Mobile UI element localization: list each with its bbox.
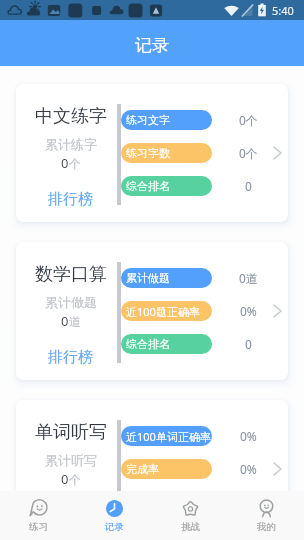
button[interactable]: 练习文字 <box>121 110 212 130</box>
staticText: 5:40 <box>272 3 294 18</box>
staticText: 0% <box>240 461 257 477</box>
button[interactable]: 近100单词正确率 <box>121 426 212 446</box>
button[interactable]: 记录 <box>0 20 304 66</box>
staticText: 记录 <box>135 35 169 56</box>
button[interactable]: 近100题正确率 <box>121 301 212 321</box>
staticText: 个 <box>69 156 81 171</box>
button[interactable]: 完成率 <box>121 459 212 479</box>
button[interactable]: 挑战 <box>152 491 228 540</box>
button[interactable]: 练习 <box>0 491 76 540</box>
staticText: 记录 <box>105 521 124 533</box>
staticText: 0个 <box>239 145 258 161</box>
staticText: 练习文字 <box>126 113 170 127</box>
button[interactable]: 数学口算 <box>16 242 288 380</box>
staticText: 近100单词正确率 <box>126 429 211 444</box>
button[interactable]: 累计做题 <box>121 268 212 288</box>
button[interactable]: 排行榜 <box>48 348 93 367</box>
staticText: 综合排名 <box>126 179 170 193</box>
staticText: 挑战 <box>181 521 200 533</box>
staticText: 0 <box>61 470 69 488</box>
staticText: 累计练字 <box>45 136 97 152</box>
staticText: 我的 <box>257 521 276 533</box>
staticText: 练习字数 <box>126 146 170 160</box>
staticText: 道 <box>69 314 81 329</box>
button[interactable]: 查看详情 <box>269 461 285 477</box>
button[interactable]: 排行榜 <box>48 190 93 209</box>
staticText: 0 <box>245 336 252 352</box>
button[interactable]: 单词听写 <box>16 400 288 491</box>
staticText: 0 <box>245 178 252 194</box>
staticText: 练习 <box>29 521 48 533</box>
staticText: 0% <box>240 303 257 319</box>
staticText: 0 <box>61 154 69 172</box>
staticText: 近100题正确率 <box>126 304 200 319</box>
staticText: 中文练字 <box>35 105 107 128</box>
staticText: 个 <box>69 472 81 487</box>
staticText: 0% <box>240 428 257 444</box>
staticText: 单词听写 <box>35 421 107 444</box>
button[interactable]: 中文练字 <box>16 84 288 222</box>
staticText: 数学口算 <box>35 263 107 286</box>
staticText: 完成率 <box>126 462 159 476</box>
staticText: 排行榜 <box>48 348 93 367</box>
staticText: 综合排名 <box>126 337 170 351</box>
button[interactable]: 查看详情 <box>269 303 285 319</box>
button[interactable]: 我的 <box>228 491 304 540</box>
button[interactable]: 练习字数 <box>121 143 212 163</box>
staticText: 累计听写 <box>45 452 97 468</box>
button[interactable]: 综合排名 <box>121 176 212 196</box>
button[interactable]: 记录 <box>76 491 152 540</box>
staticText: 0个 <box>239 112 258 128</box>
staticText: 累计做题 <box>45 294 97 310</box>
button[interactable]: 综合排名 <box>121 334 212 354</box>
staticText: 累计做题 <box>126 271 170 285</box>
staticText: 排行榜 <box>48 190 93 209</box>
staticText: 0道 <box>239 270 258 286</box>
staticText: 0 <box>61 312 69 330</box>
button[interactable]: 查看详情 <box>269 145 285 161</box>
